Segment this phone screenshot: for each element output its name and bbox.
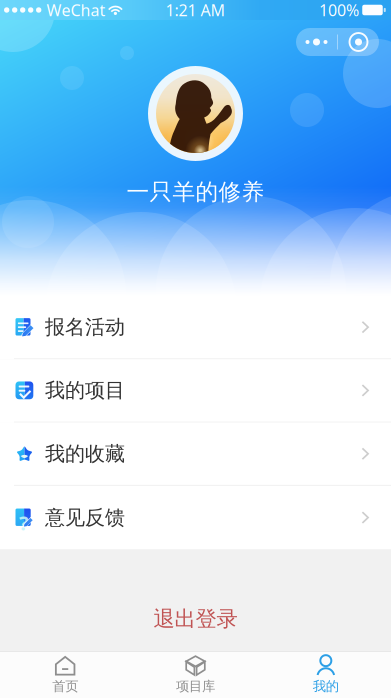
staticText: ? — [19, 510, 29, 536]
button[interactable]: 我的 — [261, 652, 391, 698]
staticText: WeChat — [46, 0, 105, 21]
staticText: 1:21 AM — [165, 0, 225, 21]
button[interactable]: 退出登录 — [0, 587, 391, 651]
button[interactable]: 我的项目 — [0, 359, 391, 423]
button[interactable]: More — [296, 28, 337, 56]
staticText: 首页 — [52, 678, 78, 695]
button[interactable]: ? — [0, 486, 391, 549]
staticText: 我的收藏 — [45, 441, 125, 466]
button[interactable]: 报名活动 — [0, 296, 391, 359]
button[interactable]: 首页 — [0, 652, 130, 698]
staticText: 一只羊的修养 — [126, 178, 264, 206]
staticText: 意见反馈 — [45, 505, 125, 530]
button[interactable]: 项目库 — [130, 652, 261, 698]
staticText: 我的项目 — [45, 378, 125, 403]
staticText: 我的 — [313, 678, 339, 695]
staticText: 100% — [319, 0, 359, 21]
staticText: 报名活动 — [45, 315, 125, 339]
staticText: 退出登录 — [153, 606, 237, 632]
staticText: 项目库 — [176, 678, 215, 695]
button[interactable]: Close mini program — [338, 28, 379, 56]
button[interactable]: 我的收藏 — [0, 423, 391, 486]
